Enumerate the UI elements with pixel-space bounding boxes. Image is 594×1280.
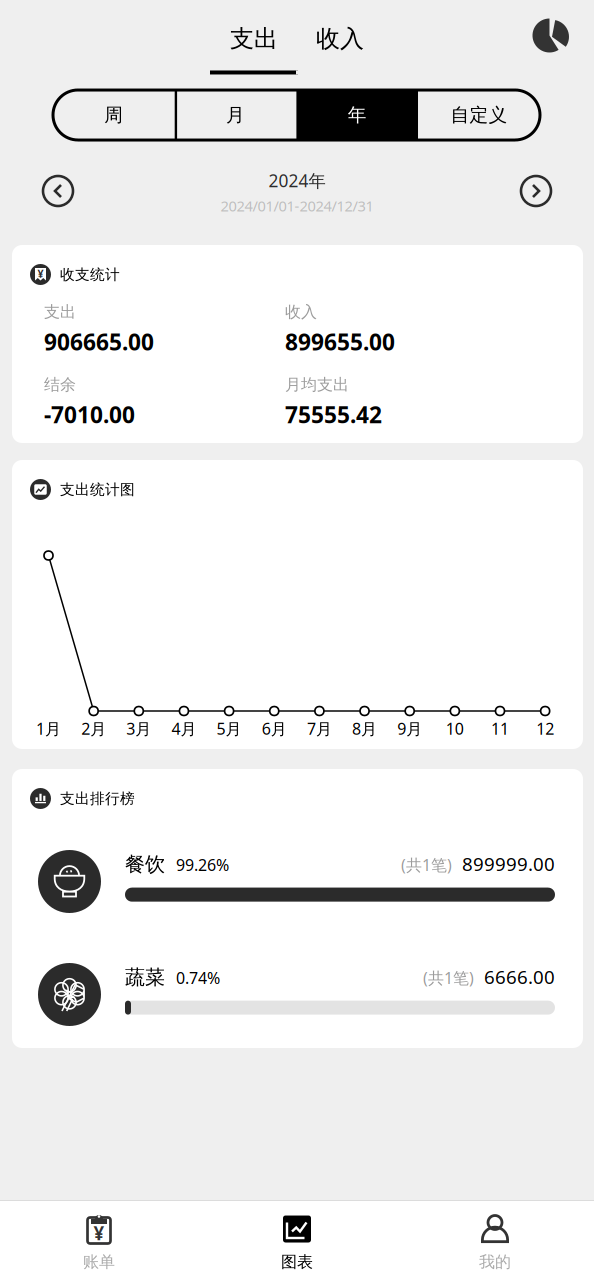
staticText: 收入 — [316, 24, 364, 53]
staticText: -7010.00 — [44, 399, 135, 429]
button[interactable]: Next period — [516, 171, 556, 211]
button[interactable]: Chart options — [533, 18, 569, 54]
staticText: ¥ — [93, 1221, 104, 1245]
staticText: 账单 — [83, 1252, 115, 1272]
staticText: 75555.42 — [285, 399, 382, 429]
staticText: 月均支出 — [285, 375, 349, 394]
staticText: 6666.00 — [484, 964, 555, 989]
staticText: 899999.00 — [462, 851, 555, 876]
staticText: 我的 — [479, 1252, 511, 1272]
staticText: 2024/01/01-2024/12/31 — [220, 196, 373, 215]
staticText: 支出 — [230, 24, 278, 53]
button[interactable]: 餐饮 — [38, 845, 555, 908]
staticText: 年 — [348, 103, 367, 126]
staticText: 2024年 — [268, 169, 325, 192]
button[interactable]: 图表 — [198, 1214, 396, 1272]
staticText: 11 — [491, 718, 509, 739]
staticText: 906665.00 — [44, 327, 154, 357]
staticText: 0.74% — [176, 967, 220, 988]
staticText: 10 — [446, 718, 464, 739]
staticText: 2月 — [81, 718, 106, 739]
staticText: 结余 — [44, 375, 76, 394]
button[interactable]: 支出 — [210, 24, 298, 74]
staticText: 月 — [226, 103, 245, 126]
staticText: 4月 — [171, 718, 196, 739]
staticText: 餐饮 — [125, 852, 165, 877]
staticText: 3月 — [126, 718, 151, 739]
staticText: 收支统计 — [60, 265, 120, 283]
staticText: 图表 — [281, 1252, 313, 1272]
staticText: 9月 — [397, 718, 422, 739]
button[interactable]: 我的 — [396, 1214, 594, 1272]
button[interactable]: 周 — [53, 90, 175, 140]
button[interactable]: 蔬菜 — [38, 958, 555, 1021]
staticText: 899655.00 — [285, 327, 395, 357]
button[interactable]: 月 — [175, 90, 296, 140]
button[interactable]: ¥ — [0, 1214, 198, 1272]
staticText: 8月 — [352, 718, 377, 739]
staticText: 1月 — [36, 718, 61, 739]
staticText: 5月 — [217, 718, 242, 739]
button[interactable]: 年 — [296, 90, 418, 140]
staticText: 99.26% — [176, 854, 229, 875]
staticText: 7月 — [307, 718, 332, 739]
staticText: 支出 — [44, 302, 76, 322]
staticText: ¥ — [37, 266, 43, 281]
staticText: 收入 — [285, 302, 317, 322]
staticText: 自定义 — [451, 103, 508, 126]
button[interactable]: Previous period — [38, 171, 78, 211]
staticText: 支出统计图 — [60, 480, 135, 498]
staticText: 6月 — [262, 718, 287, 739]
button[interactable]: 收入 — [296, 24, 384, 74]
staticText: (共1笔) — [401, 854, 452, 875]
staticText: 周 — [104, 103, 123, 126]
staticText: 12 — [536, 718, 554, 739]
staticText: 蔬菜 — [125, 965, 165, 990]
staticText: (共1笔) — [423, 967, 474, 988]
button[interactable]: 自定义 — [418, 90, 540, 140]
staticText: 支出排行榜 — [60, 789, 135, 807]
